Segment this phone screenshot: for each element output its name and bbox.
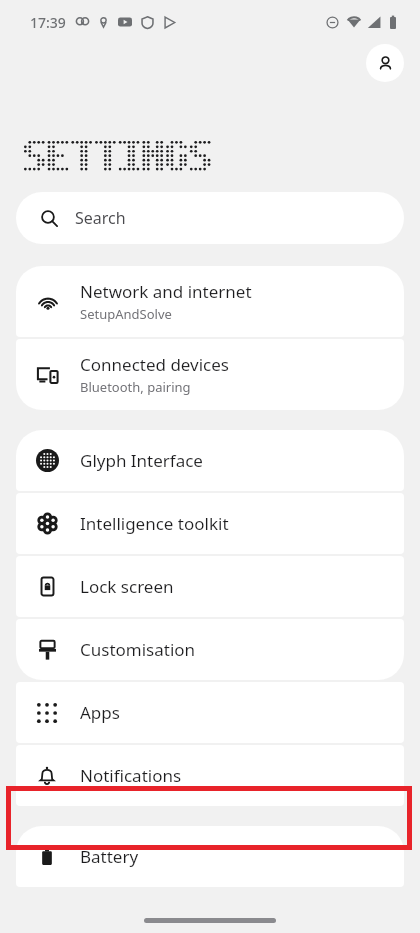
- button[interactable]: Battery: [16, 826, 404, 887]
- button[interactable]: Account: [366, 44, 404, 82]
- button[interactable]: Network and internet: [16, 266, 404, 337]
- staticText: Network and internet: [80, 280, 252, 303]
- staticText: Glyph Interface: [80, 449, 203, 472]
- staticText: Bluetooth, pairing: [80, 378, 191, 396]
- button[interactable]: Intelligence toolkit: [16, 493, 404, 554]
- button[interactable]: Search: [16, 192, 404, 244]
- staticText: Customisation: [80, 638, 196, 661]
- button[interactable]: Glyph Interface: [16, 430, 404, 491]
- button[interactable]: Connected devices: [16, 339, 404, 410]
- staticText: Intelligence toolkit: [80, 512, 229, 535]
- staticText: Lock screen: [80, 575, 174, 598]
- staticText: 17:39: [30, 13, 66, 32]
- button[interactable]: Apps: [16, 682, 404, 743]
- button[interactable]: Notifications: [16, 745, 404, 806]
- staticText: Connected devices: [80, 353, 230, 376]
- staticText: Battery: [80, 845, 139, 868]
- button[interactable]: Lock screen: [16, 556, 404, 617]
- staticText: Notifications: [80, 764, 182, 787]
- staticText: Search: [75, 207, 126, 229]
- staticText: Apps: [80, 701, 120, 724]
- staticText: SetupAndSolve: [80, 305, 172, 323]
- button[interactable]: Customisation: [16, 619, 404, 680]
